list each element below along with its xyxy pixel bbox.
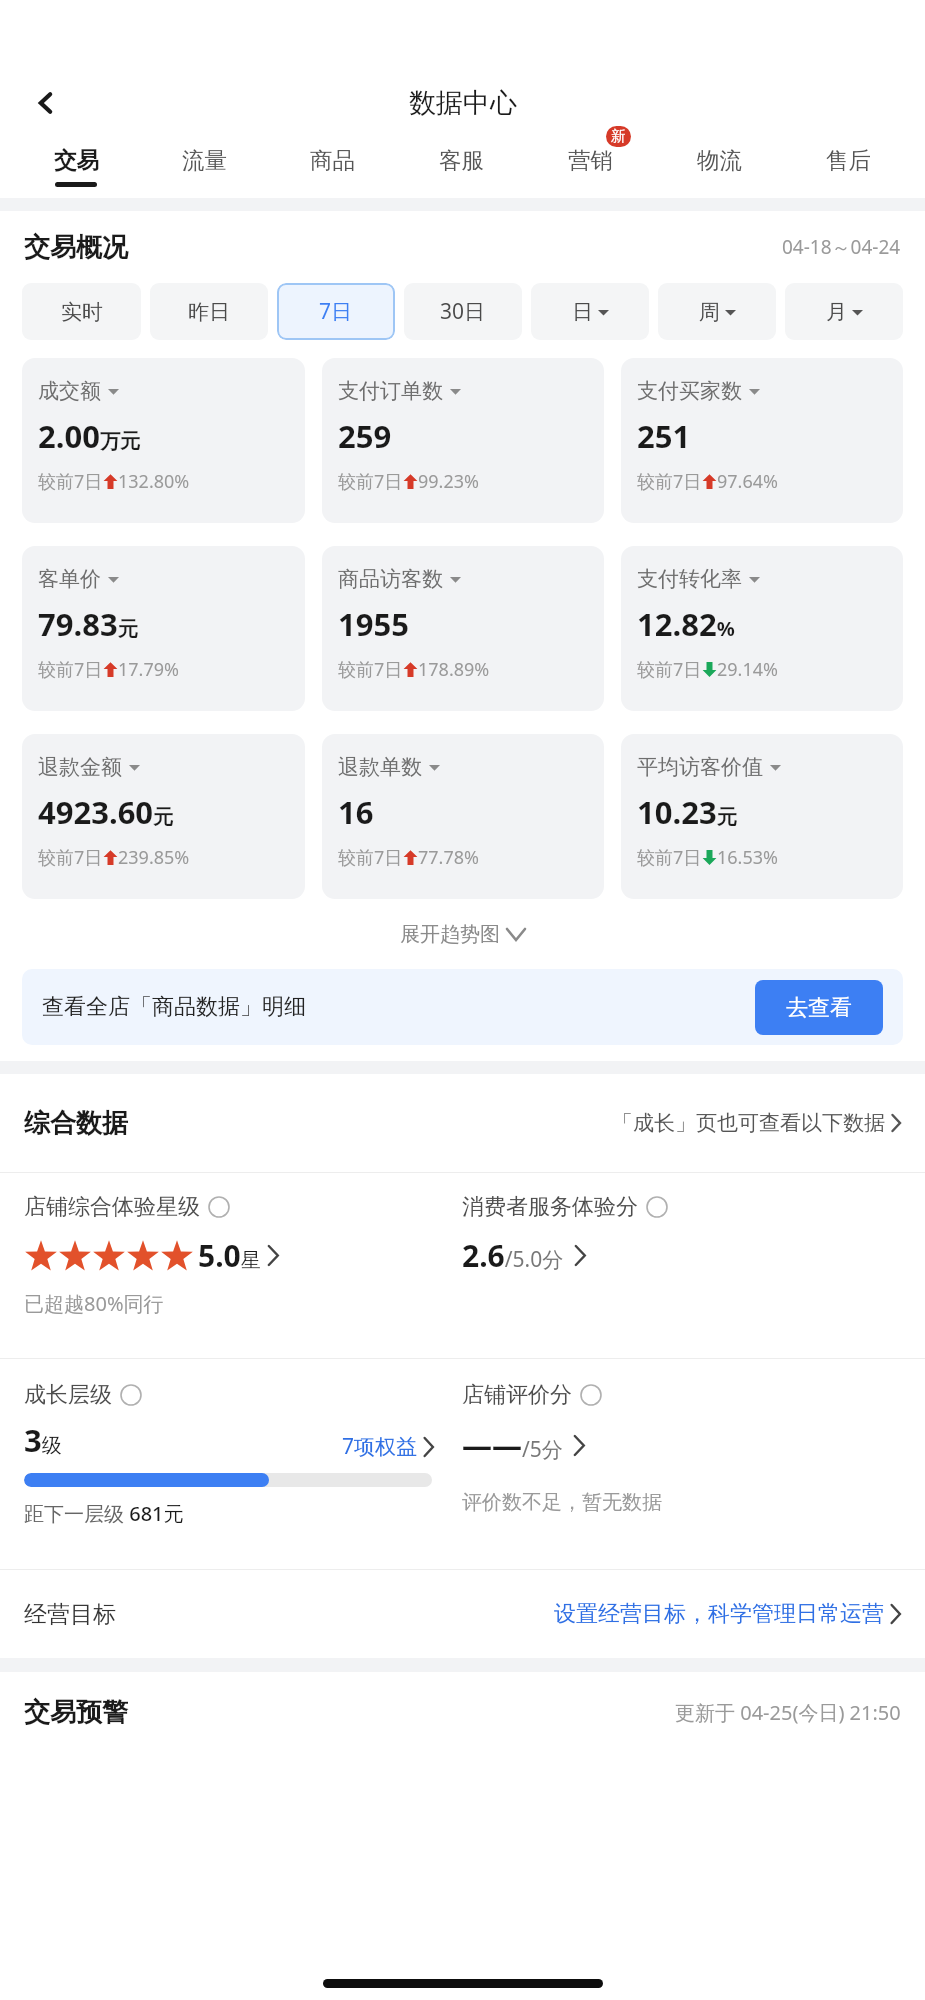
staticText: 评价数不足，暂无数据 <box>462 1490 662 1515</box>
staticText: 259 <box>338 415 392 457</box>
staticText: 退款单数 <box>338 754 422 780</box>
staticText: 30日 <box>440 297 486 326</box>
staticText: 去查看 <box>786 994 852 1022</box>
staticText: 2.6/5.0分 <box>462 1235 564 1276</box>
staticText: 99.23% <box>418 469 479 494</box>
staticText: 成交额 <box>38 378 101 404</box>
staticText: 较前7日 <box>338 469 403 494</box>
button[interactable]: 「成长」页也可查看以下数据 <box>612 1110 901 1136</box>
staticText: 29.14% <box>717 657 778 682</box>
staticText: 店铺综合体验星级 <box>24 1193 200 1221</box>
staticText: 较前7日 <box>637 845 702 870</box>
staticText: 消费者服务体验分 <box>462 1193 638 1221</box>
staticText: 较前7日 <box>38 657 103 682</box>
staticText: 97.64% <box>717 469 778 494</box>
staticText: 7项权益 <box>342 1432 418 1461</box>
staticText: 10.23元 <box>637 791 737 833</box>
staticText: 数据中心 <box>409 86 517 120</box>
staticText: 更新于 04-25(今日) 21:50 <box>675 1699 901 1726</box>
staticText: 4923.60元 <box>38 791 174 833</box>
staticText: 239.85% <box>118 845 190 870</box>
button[interactable]: 消费者服务体验分 <box>462 1193 901 1276</box>
staticText: 16.53% <box>717 845 778 870</box>
staticText: 较前7日 <box>38 469 103 494</box>
button[interactable]: 平均访客价值 <box>621 734 903 899</box>
staticText: 251 <box>637 415 691 457</box>
staticText: 退款金额 <box>38 754 122 780</box>
button[interactable]: 退款单数 <box>322 734 604 899</box>
button[interactable]: 支付转化率 <box>621 546 903 711</box>
button[interactable]: 成交额 <box>22 358 305 523</box>
staticText: 77.78% <box>418 845 479 870</box>
staticText: 物流 <box>697 146 742 174</box>
staticText: 距下一层级 681元 <box>24 1500 184 1527</box>
staticText: 交易预警 <box>24 1696 128 1729</box>
staticText: 实时 <box>61 299 103 325</box>
staticText: 经营目标 <box>24 1600 116 1629</box>
staticText: 平均访客价值 <box>637 754 763 780</box>
button[interactable]: 30日 <box>404 283 522 340</box>
button[interactable]: 客服 <box>397 134 526 198</box>
staticText: 支付买家数 <box>637 378 742 404</box>
staticText: 客单价 <box>38 566 101 592</box>
staticText: 17.79% <box>118 657 179 682</box>
button[interactable]: 周 <box>658 283 776 340</box>
staticText: 79.83元 <box>38 603 138 645</box>
button[interactable]: 商品访客数 <box>322 546 604 711</box>
button[interactable]: 日 <box>531 283 649 340</box>
staticText: 营销 <box>568 146 613 174</box>
staticText: 售后 <box>826 146 871 174</box>
staticText: 日 <box>572 299 593 325</box>
staticText: 新 <box>611 127 626 146</box>
button[interactable]: 7日 <box>277 283 395 340</box>
staticText: 较前7日 <box>637 657 702 682</box>
staticText: 1955 <box>338 603 409 645</box>
staticText: 支付订单数 <box>338 378 443 404</box>
button[interactable]: 退款金额 <box>22 734 305 899</box>
staticText: 查看全店「商品数据」明细 <box>42 993 306 1021</box>
button[interactable]: 展开趋势图 <box>0 899 925 969</box>
staticText: 商品访客数 <box>338 566 443 592</box>
staticText: 交易 <box>54 146 99 174</box>
button[interactable]: 去查看 <box>755 980 883 1035</box>
staticText: 支付转化率 <box>637 566 742 592</box>
button[interactable]: 昨日 <box>150 283 268 340</box>
staticText: 交易概况 <box>24 231 128 264</box>
button[interactable]: 7项权益 <box>342 1432 462 1461</box>
button[interactable]: 经营目标 <box>0 1570 925 1658</box>
button[interactable]: 营销 <box>526 134 655 198</box>
staticText: 7日 <box>319 297 353 326</box>
staticText: 周 <box>699 299 720 325</box>
staticText: 178.89% <box>418 657 490 682</box>
staticText: 成长层级 <box>24 1381 112 1409</box>
button[interactable]: Back <box>22 79 70 127</box>
staticText: 5.0星 <box>198 1235 261 1276</box>
staticText: ——/5分 <box>462 1425 563 1466</box>
staticText: 12.82% <box>637 603 735 645</box>
staticText: 「成长」页也可查看以下数据 <box>612 1110 885 1136</box>
button[interactable]: 月 <box>785 283 903 340</box>
button[interactable]: 支付买家数 <box>621 358 903 523</box>
button[interactable]: 商品 <box>268 134 397 198</box>
staticText: 月 <box>826 299 847 325</box>
button[interactable]: 支付订单数 <box>322 358 604 523</box>
button[interactable]: 交易 <box>12 134 140 198</box>
button[interactable]: 流量 <box>140 134 268 198</box>
staticText: 已超越80%同行 <box>24 1290 164 1317</box>
button[interactable]: 店铺综合体验星级 <box>24 1193 462 1317</box>
staticText: 昨日 <box>188 299 230 325</box>
staticText: 综合数据 <box>24 1107 128 1140</box>
staticText: 16 <box>338 791 374 833</box>
staticText: 较前7日 <box>338 657 403 682</box>
button[interactable]: 物流 <box>655 134 784 198</box>
staticText: 132.80% <box>118 469 190 494</box>
staticText: 较前7日 <box>637 469 702 494</box>
button[interactable]: ——/5分 <box>462 1425 585 1466</box>
staticText: 流量 <box>182 146 227 174</box>
staticText: 3级 <box>24 1419 62 1461</box>
button[interactable]: 售后 <box>784 134 913 198</box>
staticText: 设置经营目标，科学管理日常运营 <box>554 1600 884 1628</box>
button[interactable]: 客单价 <box>22 546 305 711</box>
staticText: 较前7日 <box>338 845 403 870</box>
button[interactable]: 实时 <box>22 283 141 340</box>
